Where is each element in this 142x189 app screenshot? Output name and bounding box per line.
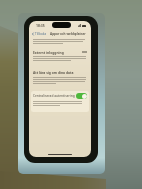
button[interactable]: Centraliserad autentisering xyxy=(31,92,89,99)
other: Centraliserad autentisering toggle xyxy=(76,93,87,99)
button[interactable]: Tillbaka xyxy=(31,31,48,37)
staticText: 18:35 xyxy=(36,23,45,28)
staticText: Tillbaka xyxy=(35,32,47,36)
staticText: Externt inloggning xyxy=(33,50,64,54)
staticText: Centraliserad autentisering xyxy=(33,94,75,98)
staticText: Att lära sig om dina data xyxy=(33,70,74,74)
staticText: Appar och webbplatser xyxy=(50,32,86,36)
